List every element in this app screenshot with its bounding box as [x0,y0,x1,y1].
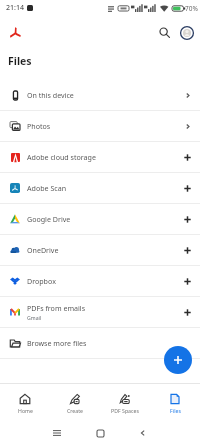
staticText: Adobe cloud storage [27,152,96,162]
staticText: On this device [27,90,74,100]
button[interactable]: On this device [0,80,200,110]
button[interactable]: Files [150,384,200,420]
button[interactable]: Search [155,23,173,41]
staticText: Files [170,407,181,414]
staticText: PDF Spaces [111,407,139,414]
staticText: 21:14 [6,3,24,13]
button[interactable]: Google Drive [0,204,200,234]
staticText: Browse more files [27,338,87,348]
staticText: Gmail [27,314,42,321]
button[interactable]: Create [164,346,192,374]
staticText: Adobe Scan [27,183,67,193]
button[interactable]: Adobe cloud storage [0,142,200,172]
button[interactable]: PDFs from emails [0,297,200,327]
button[interactable]: Acrobat [6,23,24,41]
button[interactable]: Adobe Scan [0,173,200,203]
staticText: Create [67,407,83,414]
button[interactable]: OneDrive [0,235,200,265]
staticText: Home [18,407,33,414]
staticText: Photos [27,121,51,131]
button[interactable]: Dropbox [0,266,200,296]
button[interactable]: Account [179,25,194,40]
staticText: 70% [185,4,198,13]
button[interactable]: Back [135,425,151,441]
staticText: OneDrive [27,245,59,255]
staticText: Google Drive [27,214,71,224]
button[interactable]: Home [0,384,50,420]
button[interactable]: Home [92,425,108,441]
button[interactable]: Browse more files [0,328,200,358]
button[interactable]: PDF Spaces [100,384,150,420]
button[interactable]: Recent apps [49,425,65,441]
staticText: Files [8,54,32,68]
staticText: Dropbox [27,276,56,286]
button[interactable]: Create [50,384,100,420]
button[interactable]: Photos [0,111,200,141]
staticText: PDFs from emails [27,303,86,313]
